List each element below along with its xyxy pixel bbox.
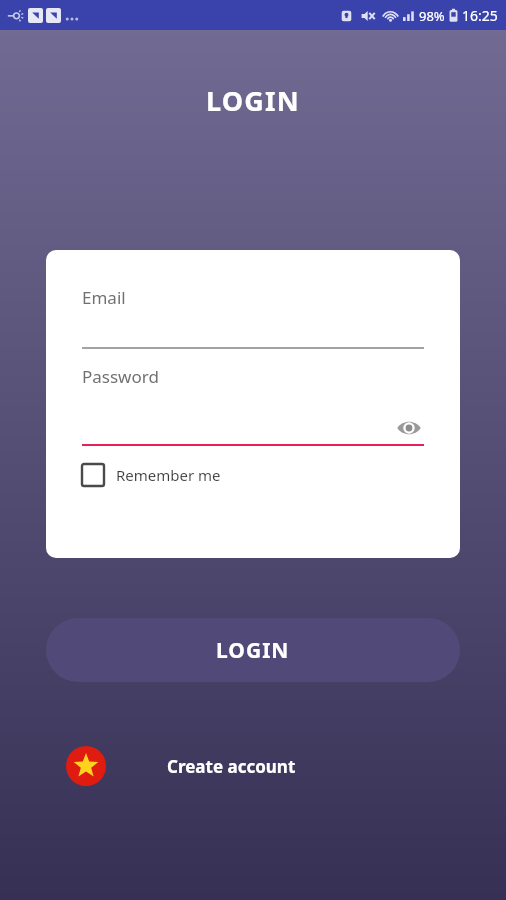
staticText: Email (82, 286, 126, 309)
staticText: LOGIN (0, 82, 506, 119)
button[interactable]: Language (66, 746, 106, 786)
staticText: Password (82, 365, 159, 388)
button[interactable]: Show password (394, 415, 424, 441)
staticText: LOGIN (216, 636, 290, 665)
button[interactable]: Create account (167, 755, 296, 778)
staticText: 16:25 (462, 6, 498, 25)
staticText: Remember me (116, 465, 221, 485)
staticText: 98% (419, 7, 445, 25)
button[interactable]: Remember me (82, 464, 221, 486)
button[interactable]: LOGIN (46, 618, 460, 682)
staticText: Create account (167, 755, 296, 778)
